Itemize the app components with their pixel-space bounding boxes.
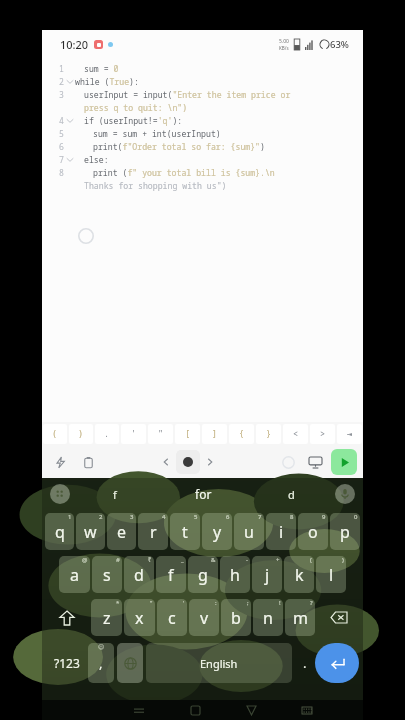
staticText: n (263, 607, 273, 629)
staticText: print(f"Order total so far: {sum}") (93, 141, 265, 152)
button[interactable]: ) (69, 424, 93, 444)
button[interactable]: q (45, 513, 74, 550)
button[interactable]: d (124, 556, 154, 593)
staticText: ' (131, 428, 137, 440)
button[interactable]: Next (200, 452, 220, 472)
staticText: 2 (99, 513, 103, 521)
staticText: q (55, 521, 65, 543)
button[interactable]: Record (176, 450, 200, 474)
button[interactable]: ( (43, 424, 67, 444)
staticText: p (340, 521, 350, 543)
button[interactable]: ?123 (46, 643, 88, 683)
button[interactable]: . (95, 424, 119, 444)
button[interactable]: Previous (156, 452, 176, 472)
button[interactable]: f (156, 556, 186, 593)
button[interactable]: Enter (315, 643, 359, 683)
button[interactable]: , (88, 643, 114, 683)
button[interactable]: u (234, 513, 264, 550)
button[interactable]: s (92, 556, 122, 593)
button[interactable]: > (310, 424, 335, 444)
staticText: j (265, 564, 270, 586)
button[interactable]: Backspace (317, 599, 360, 636)
staticText: ) (342, 556, 344, 564)
staticText: k (295, 564, 304, 586)
staticText: c (168, 607, 176, 629)
button[interactable]: for (159, 486, 247, 502)
button[interactable]: g (188, 556, 218, 593)
staticText: _ (181, 556, 184, 564)
button[interactable]: { (229, 424, 254, 444)
staticText: . (104, 428, 110, 440)
button[interactable]: } (256, 424, 281, 444)
button[interactable]: z (91, 599, 122, 636)
staticText: > (320, 428, 326, 440)
staticText: userInput = input("Enter the item price … (84, 89, 291, 100)
button[interactable]: l (316, 556, 346, 593)
staticText: 6 (59, 141, 64, 152)
button[interactable]: Keyboard switcher (279, 700, 335, 720)
button[interactable]: k (284, 556, 314, 593)
staticText: 63% (330, 38, 349, 51)
staticText: for (195, 486, 212, 502)
button[interactable]: [ (175, 424, 200, 444)
button[interactable]: < (283, 424, 308, 444)
button[interactable]: h (220, 556, 250, 593)
staticText: if (userInput!='q'): (84, 115, 183, 126)
button[interactable]: i (266, 513, 296, 550)
staticText: & (211, 556, 216, 564)
button[interactable]: Change language (117, 643, 143, 683)
button[interactable]: Back (223, 700, 279, 720)
staticText: 7 (59, 154, 64, 165)
staticText: 8 (290, 513, 294, 521)
staticText: ; (247, 599, 249, 607)
staticText: u (244, 521, 254, 543)
button[interactable]: Voice input (335, 484, 355, 504)
button[interactable]: Stop (277, 451, 299, 473)
button[interactable]: e (107, 513, 136, 550)
button[interactable]: o (298, 513, 328, 550)
button[interactable]: " (148, 424, 173, 444)
staticText: sum = 0 (84, 63, 119, 74)
staticText: + (276, 556, 280, 564)
button[interactable]: Run (331, 449, 357, 475)
button[interactable]: Recents (111, 700, 167, 720)
staticText: ( (310, 556, 312, 564)
staticText: w (84, 521, 97, 543)
button[interactable]: n (253, 599, 283, 636)
button[interactable]: English (146, 643, 292, 683)
button[interactable]: . (295, 643, 315, 683)
button[interactable]: j (252, 556, 282, 593)
staticText: 6 (226, 513, 230, 521)
button[interactable]: c (157, 599, 187, 636)
staticText: else: (84, 154, 109, 165)
button[interactable]: a (59, 556, 90, 593)
staticText: z (103, 607, 111, 629)
button[interactable]: ' (121, 424, 146, 444)
button[interactable]: t (170, 513, 200, 550)
button[interactable]: w (76, 513, 105, 550)
staticText: ! (279, 599, 281, 607)
button[interactable]: Paste (76, 450, 100, 474)
button[interactable]: ⇥ (337, 424, 362, 444)
button[interactable]: Quick actions (48, 450, 72, 474)
staticText: 5.00 (279, 38, 289, 45)
staticText: ) (78, 428, 84, 440)
button[interactable]: v (189, 599, 219, 636)
button[interactable]: Home (167, 700, 223, 720)
staticText: r (150, 521, 157, 543)
button[interactable]: r (138, 513, 168, 550)
button[interactable]: b (221, 599, 251, 636)
staticText: Thanks for shopping with us") (84, 180, 227, 191)
button[interactable]: Shift (45, 599, 89, 636)
staticText: : (215, 599, 217, 607)
staticText: a (70, 564, 79, 586)
button[interactable]: Menu (50, 484, 70, 504)
staticText: . (303, 654, 307, 672)
button[interactable]: y (202, 513, 232, 550)
button[interactable]: p (330, 513, 360, 550)
button[interactable]: m (285, 599, 315, 636)
staticText: g (198, 564, 208, 586)
button[interactable]: x (124, 599, 155, 636)
button[interactable]: Keyboard (303, 450, 327, 474)
button[interactable]: ] (202, 424, 227, 444)
